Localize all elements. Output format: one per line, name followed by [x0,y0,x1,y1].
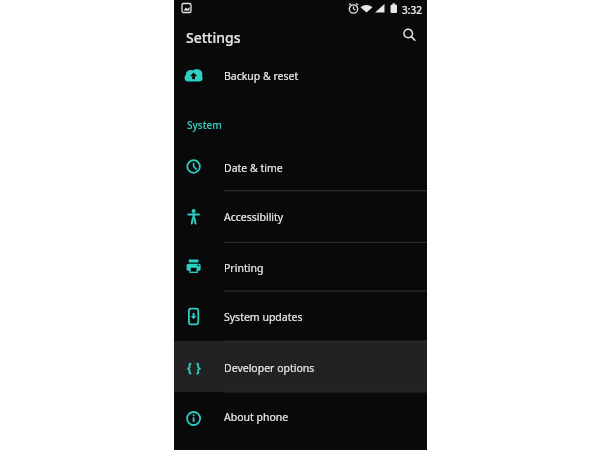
button[interactable]: Accessibility [174,191,427,241]
staticText: Printing [224,261,264,275]
button[interactable]: System updates [174,291,427,341]
button[interactable] [393,21,423,51]
staticText: } [196,359,201,375]
button[interactable]: Printing [174,242,427,292]
staticText: { [187,359,192,375]
button[interactable]: About phone [174,391,427,441]
button[interactable]: Date & time [174,142,427,192]
staticText: About phone [224,410,289,424]
button[interactable]: Developer options [174,341,427,392]
staticText: System updates [224,310,303,324]
button[interactable]: Backup & reset [174,49,427,100]
staticText: Backup & reset [224,69,299,83]
staticText: Developer options [224,361,315,375]
staticText: Accessibility [224,210,284,224]
staticText: 3:32 [402,3,422,17]
staticText: Date & time [224,161,283,175]
staticText: Settings [186,28,241,47]
staticText: System [187,118,222,132]
